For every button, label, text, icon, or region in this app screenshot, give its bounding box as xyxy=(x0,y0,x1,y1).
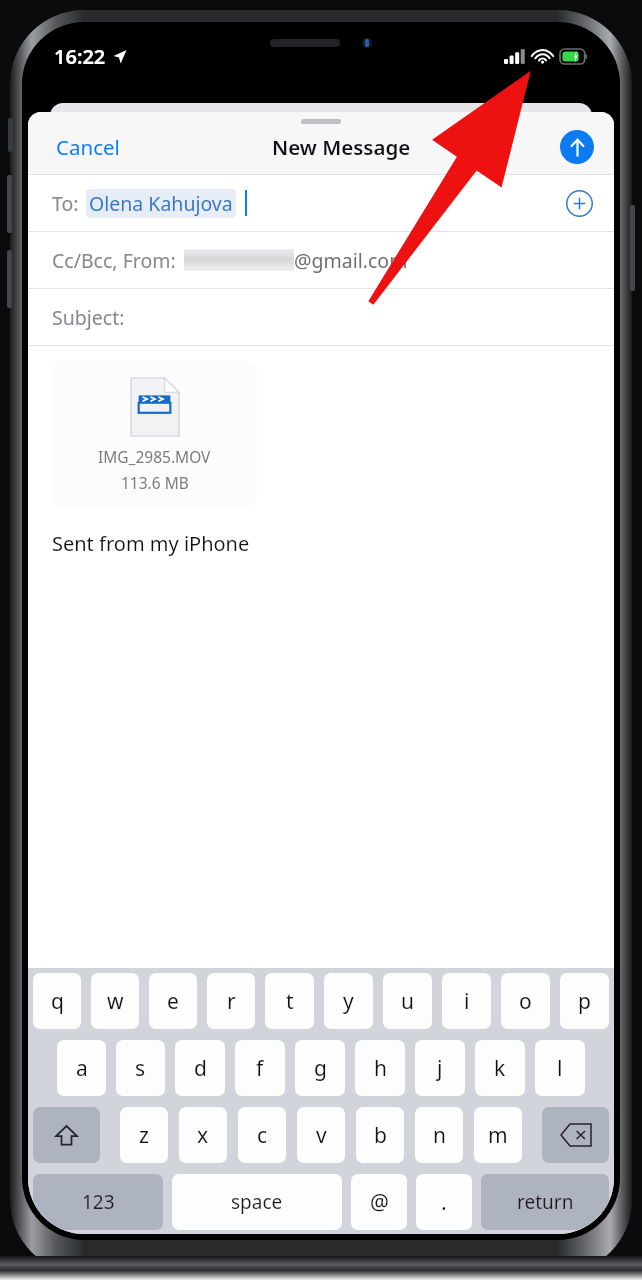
button[interactable]: k xyxy=(475,1040,525,1096)
staticText: l xyxy=(557,1054,563,1083)
button[interactable]: b xyxy=(356,1107,404,1163)
button[interactable]: i xyxy=(442,973,491,1029)
staticText: Olena Kahujova xyxy=(89,190,233,217)
staticText: 123 xyxy=(82,1189,115,1215)
staticText: IMG_2985.MOV xyxy=(98,446,211,467)
staticText: v xyxy=(316,1121,327,1150)
button[interactable]: x xyxy=(179,1107,227,1163)
staticText: 113.6 MB xyxy=(121,472,189,493)
staticText: return xyxy=(517,1189,574,1215)
staticText: g xyxy=(314,1054,327,1083)
staticText: q xyxy=(51,987,64,1016)
staticText: Cancel xyxy=(56,133,120,161)
button[interactable]: e xyxy=(149,973,197,1029)
button[interactable]: c xyxy=(238,1107,286,1163)
staticText: k xyxy=(494,1054,506,1083)
button[interactable]: . xyxy=(416,1174,472,1230)
button[interactable]: z xyxy=(120,1107,168,1163)
staticText: @ xyxy=(370,1188,389,1217)
button[interactable]: Cc/Bcc, From: xyxy=(28,232,614,288)
button[interactable]: a xyxy=(57,1040,106,1096)
button[interactable]: Send xyxy=(560,130,594,164)
staticText: d xyxy=(194,1054,207,1083)
staticText: . xyxy=(441,1188,447,1217)
staticText: Cc/Bcc, From: xyxy=(52,247,176,274)
staticText: To: xyxy=(52,190,79,217)
button[interactable]: g xyxy=(295,1040,345,1096)
staticText: h xyxy=(374,1054,387,1083)
button[interactable]: u xyxy=(383,973,432,1029)
staticText: a xyxy=(76,1054,88,1083)
button[interactable]: t xyxy=(265,973,314,1029)
button[interactable]: Add contact xyxy=(564,188,594,218)
button[interactable]: o xyxy=(501,973,550,1029)
button[interactable]: q xyxy=(33,973,81,1029)
button[interactable]: y xyxy=(324,973,373,1029)
staticText: space xyxy=(231,1189,283,1215)
staticText: b xyxy=(374,1121,387,1150)
staticText: w xyxy=(107,987,124,1016)
staticText: t xyxy=(286,987,294,1016)
staticText: c xyxy=(257,1121,268,1150)
button[interactable]: j xyxy=(415,1040,465,1096)
button[interactable]: h xyxy=(355,1040,405,1096)
staticText: i xyxy=(464,987,470,1016)
button[interactable]: Shift xyxy=(33,1107,100,1163)
button[interactable]: Cancel xyxy=(52,129,124,165)
button[interactable]: s xyxy=(116,1040,165,1096)
button[interactable]: space xyxy=(172,1174,342,1230)
staticText: Subject: xyxy=(52,304,125,331)
staticText: o xyxy=(519,987,532,1016)
staticText: j xyxy=(437,1054,443,1083)
button[interactable]: d xyxy=(175,1040,225,1096)
button[interactable]: l xyxy=(535,1040,585,1096)
staticText: New Message xyxy=(272,133,411,161)
button[interactable]: @ xyxy=(351,1174,407,1230)
staticText: s xyxy=(135,1054,146,1083)
staticText: u xyxy=(401,987,414,1016)
button[interactable]: n xyxy=(415,1107,463,1163)
staticText: p xyxy=(578,987,591,1016)
button[interactable]: p xyxy=(560,973,609,1029)
button[interactable]: Backspace xyxy=(542,1107,609,1163)
staticText: r xyxy=(227,987,236,1016)
staticText: y xyxy=(343,987,354,1016)
button[interactable]: m xyxy=(474,1107,522,1163)
button[interactable]: w xyxy=(91,973,139,1029)
staticText: e xyxy=(167,987,179,1016)
staticText: 16:22 xyxy=(54,43,106,70)
staticText: f xyxy=(256,1054,264,1083)
button[interactable]: f xyxy=(235,1040,285,1096)
staticText: Sent from my iPhone xyxy=(52,530,250,557)
staticText: m xyxy=(488,1121,508,1150)
staticText: x xyxy=(197,1121,209,1150)
button[interactable]: r xyxy=(207,973,255,1029)
button[interactable]: 123 xyxy=(33,1174,163,1230)
button[interactable]: return xyxy=(481,1174,609,1230)
button[interactable]: v xyxy=(297,1107,345,1163)
button[interactable]: IMG_2985.MOV xyxy=(52,360,257,508)
button[interactable]: Subject: xyxy=(28,289,614,345)
staticText: z xyxy=(139,1121,149,1150)
button[interactable]: To: xyxy=(28,175,614,231)
staticText: n xyxy=(433,1121,446,1150)
staticText: @gmail.com xyxy=(294,247,408,274)
